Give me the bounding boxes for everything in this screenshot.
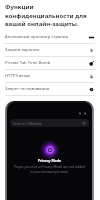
staticText: Private Tab Time Bomb	[5, 60, 87, 66]
button[interactable]: Search or Website	[10, 119, 89, 127]
staticText: Запрет отслеживания	[5, 86, 87, 92]
staticText: Функции конфиденциальности для вашей онл…	[5, 3, 92, 27]
staticText: Pages you visit in Privacy Mode are not …	[14, 164, 85, 174]
staticText: HTTPS везде	[5, 73, 87, 79]
staticText: Защита паролем	[5, 47, 87, 53]
button[interactable]: HTTPS везде	[0, 70, 100, 82]
button[interactable]: Private Tab Time Bomb	[0, 57, 100, 69]
button[interactable]: Защита паролем	[0, 44, 100, 56]
button[interactable]: Запрет отслеживания	[0, 83, 100, 95]
button[interactable]: Анонимный просмотр страниц	[0, 31, 100, 43]
staticText: Privacy Mode	[7, 158, 92, 163]
staticText: Search or Website	[13, 121, 82, 126]
staticText: Анонимный просмотр страниц	[5, 34, 87, 40]
